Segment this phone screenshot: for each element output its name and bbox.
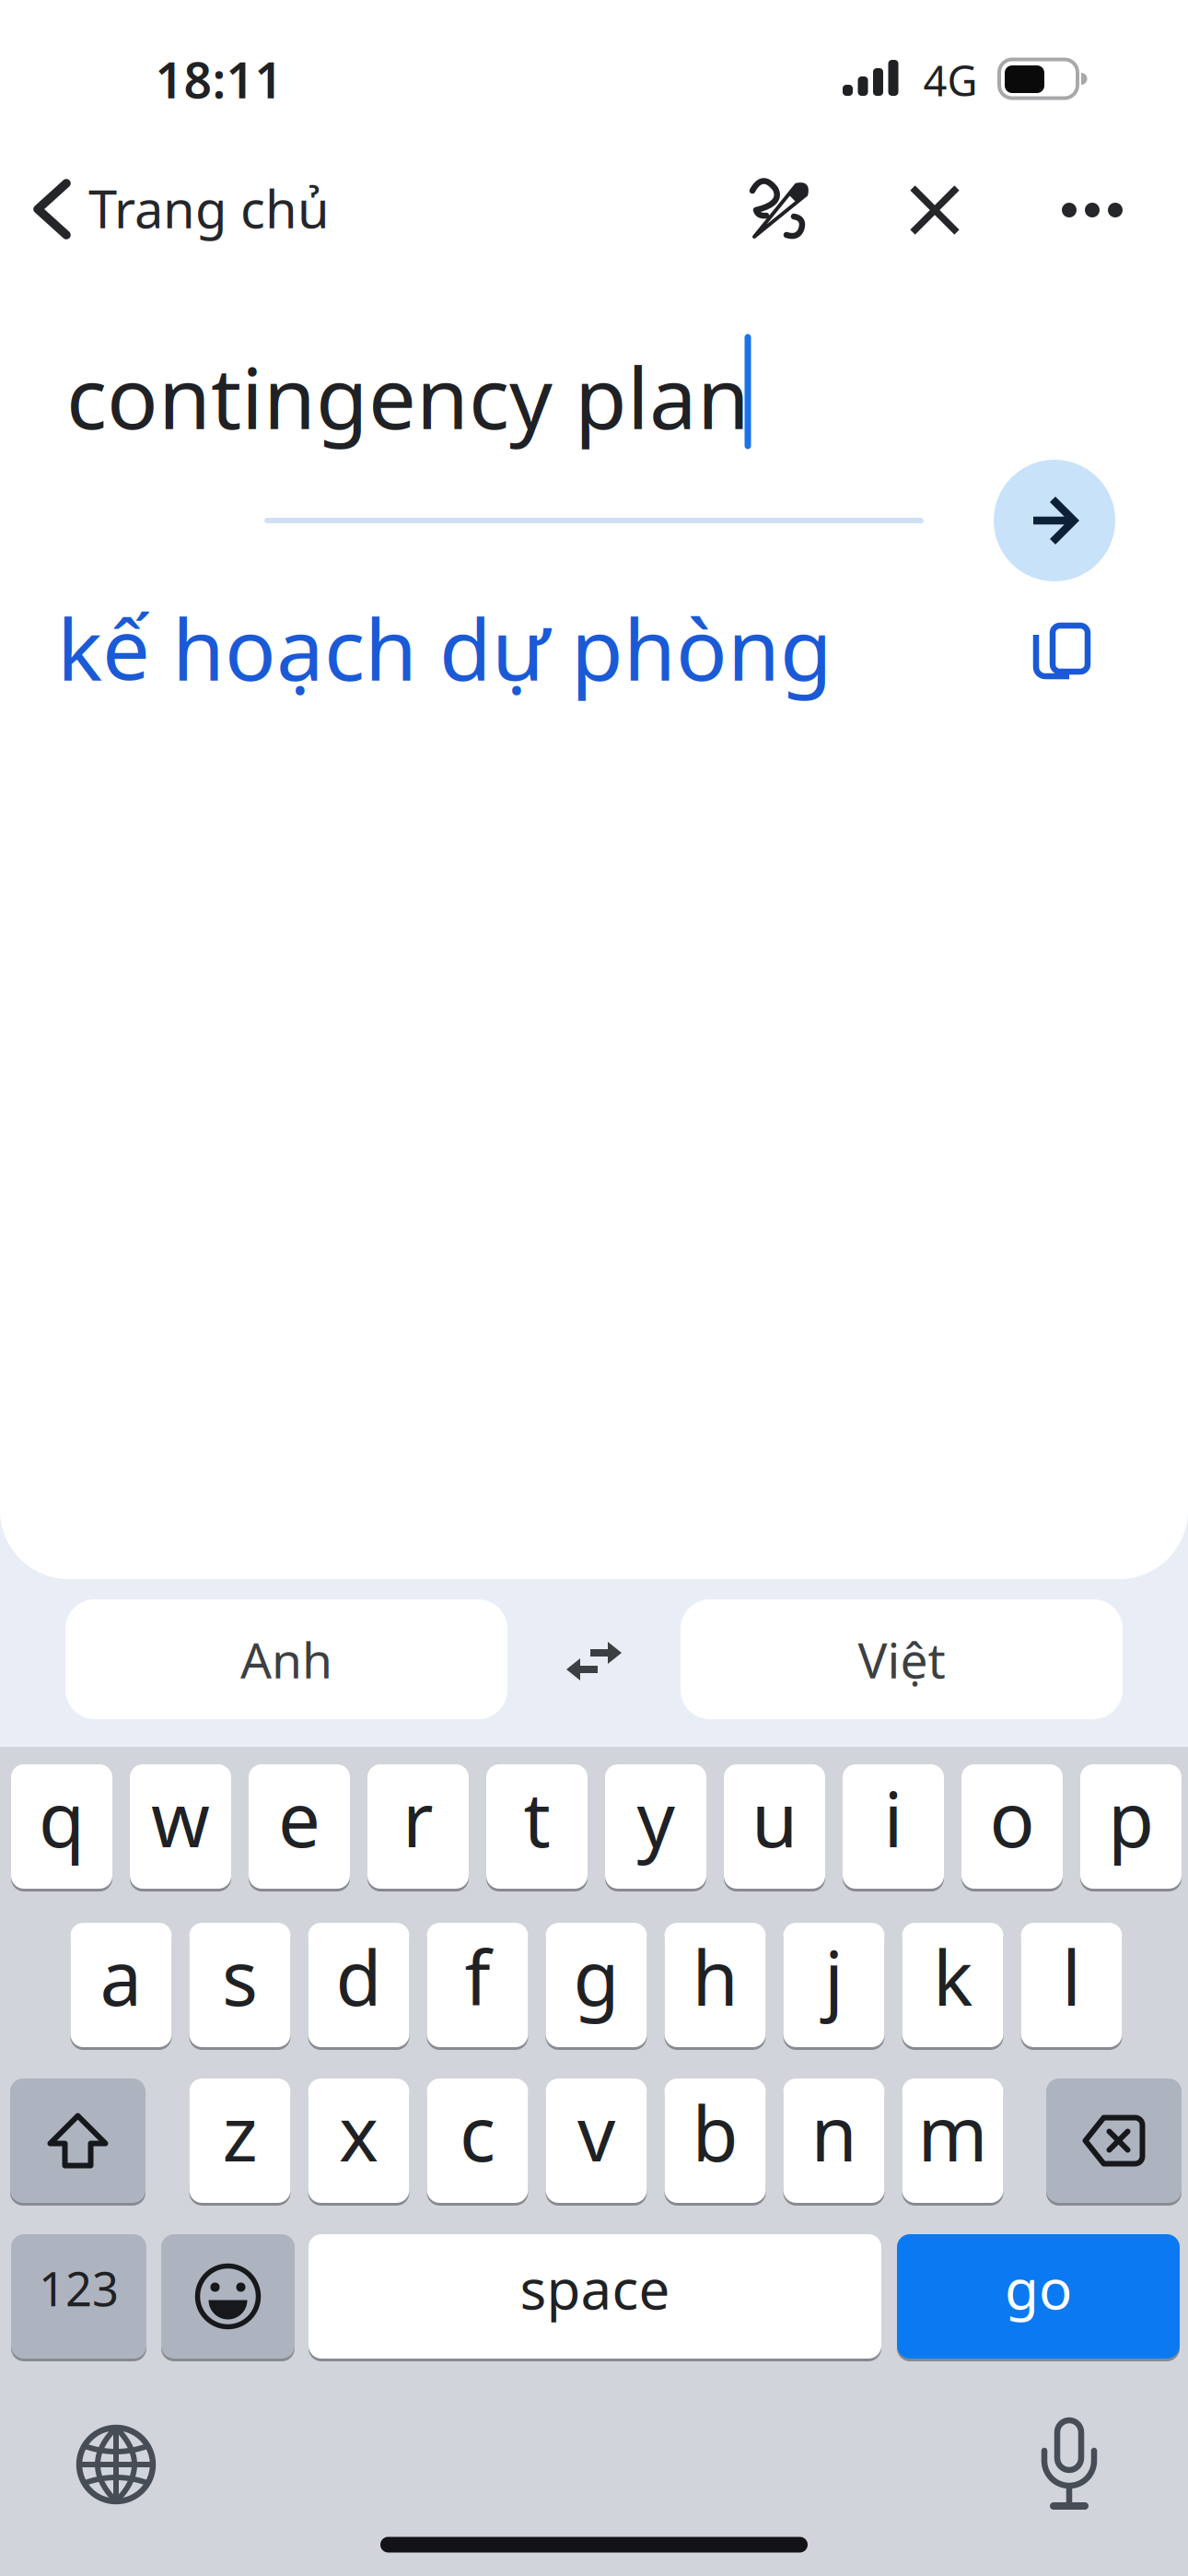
button[interactable]: Trang chủ [28,170,396,249]
staticText: g [573,1927,619,2026]
staticText: space [520,2251,670,2325]
staticText: b [692,2083,738,2182]
button[interactable] [10,2077,146,2204]
staticText: i [884,1768,903,1868]
button[interactable]: k [902,1921,1003,2049]
staticText: e [278,1768,320,1868]
button[interactable]: space [309,2233,881,2360]
button[interactable]: x [308,2077,409,2204]
button[interactable]: u [724,1763,825,1890]
button[interactable]: Việt [681,1599,1123,1719]
button[interactable] [161,2233,295,2360]
button[interactable]: j [783,1921,885,2049]
staticText: p [1108,1768,1154,1868]
staticText: c [460,2083,495,2182]
button[interactable]: b [664,2077,766,2204]
staticText: go [1005,2251,1072,2325]
button[interactable] [1055,196,1129,224]
button[interactable]: w [130,1763,231,1890]
staticText: u [751,1768,798,1868]
staticText: contingency plan [66,340,750,452]
button[interactable]: f [427,1921,528,2049]
staticText: q [39,1768,85,1868]
button[interactable]: l [1021,1921,1122,2049]
staticText: y [637,1768,675,1868]
button[interactable]: n [783,2077,885,2204]
staticText: x [339,2083,379,2182]
button[interactable] [737,169,820,252]
button[interactable]: t [486,1763,588,1890]
button[interactable]: r [367,1763,469,1890]
button[interactable]: y [605,1763,706,1890]
button[interactable]: v [546,2077,647,2204]
staticText: Việt [858,1627,945,1692]
staticText: h [692,1927,738,2026]
button[interactable] [76,2424,157,2505]
staticText: r [402,1768,434,1868]
button[interactable] [907,182,962,238]
button[interactable]: p [1080,1763,1182,1890]
staticText: o [990,1768,1035,1868]
button[interactable] [994,460,1115,581]
staticText: Anh [240,1627,332,1692]
button[interactable]: e [249,1763,350,1890]
staticText: l [1062,1927,1081,2026]
staticText: f [465,1927,490,2026]
staticText: z [222,2083,257,2182]
staticText: 18:11 [155,47,283,112]
staticText: t [524,1768,550,1868]
staticText: n [811,2083,857,2182]
button[interactable] [1046,2077,1182,2204]
button[interactable]: go [897,2233,1180,2360]
staticText: Trang chủ [88,174,330,242]
staticText: a [100,1927,142,2026]
staticText: m [918,2083,988,2182]
staticText: s [222,1927,258,2026]
button[interactable]: o [961,1763,1063,1890]
button[interactable]: 123 [11,2233,146,2360]
staticText: kế hoạch dự phòng [57,591,833,704]
button[interactable] [1035,623,1090,687]
staticText: d [336,1927,382,2026]
button[interactable]: q [11,1763,112,1890]
staticText: j [824,1927,844,2026]
button[interactable]: i [843,1763,944,1890]
staticText: w [151,1768,210,1868]
staticText: 4G [923,52,978,108]
button[interactable]: s [189,1921,291,2049]
staticText: 123 [39,2257,119,2319]
button[interactable]: Anh [65,1599,507,1719]
button[interactable]: d [308,1921,409,2049]
button[interactable]: a [70,1921,172,2049]
staticText: v [577,2083,615,2182]
button[interactable]: c [427,2077,528,2204]
button[interactable]: z [189,2077,291,2204]
button[interactable]: h [664,1921,766,2049]
button[interactable]: g [546,1921,647,2049]
staticText: k [933,1927,973,2026]
button[interactable] [557,1629,631,1693]
button[interactable]: m [902,2077,1003,2204]
button[interactable] [1037,2418,1101,2513]
